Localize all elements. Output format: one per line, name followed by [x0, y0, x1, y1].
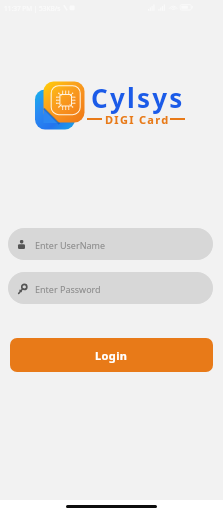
staticText: Enter Password: [35, 283, 101, 295]
button[interactable]: Enter UserName: [8, 228, 213, 260]
staticText: Login: [95, 348, 128, 363]
staticText: Cylsys: [91, 80, 185, 115]
button[interactable]: Enter Password: [8, 272, 213, 304]
staticText: DIGI Card: [105, 112, 170, 127]
button[interactable]: Login: [10, 338, 213, 372]
staticText: Enter UserName: [35, 239, 106, 251]
